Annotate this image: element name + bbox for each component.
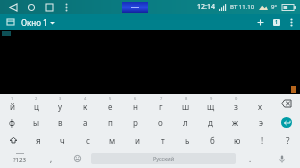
button[interactable]: в bbox=[48, 113, 73, 131]
staticText: ? bbox=[286, 135, 290, 146]
staticText: и bbox=[135, 135, 140, 146]
staticText: о bbox=[158, 117, 163, 128]
button[interactable]: м bbox=[100, 131, 125, 149]
staticText: к bbox=[83, 101, 88, 112]
button[interactable]: 2 bbox=[24, 94, 48, 113]
staticText: , bbox=[50, 153, 53, 164]
staticText: т bbox=[161, 135, 165, 146]
staticText: щ bbox=[207, 101, 215, 112]
button[interactable]: 1 bbox=[0, 94, 24, 113]
staticText: у bbox=[58, 101, 63, 112]
staticText: 7 bbox=[160, 96, 163, 101]
staticText: Русский bbox=[153, 155, 175, 162]
staticText: л bbox=[183, 117, 188, 128]
button[interactable]: More navigation options bbox=[58, 0, 74, 14]
button[interactable]: а bbox=[73, 113, 98, 131]
staticText: с bbox=[86, 135, 90, 146]
button[interactable]: ? bbox=[275, 131, 300, 149]
button[interactable]: 5 bbox=[98, 94, 123, 113]
staticText: ж bbox=[232, 117, 239, 128]
staticText: н bbox=[133, 101, 138, 112]
staticText: ш bbox=[182, 101, 190, 112]
button[interactable]: Русский bbox=[91, 153, 236, 164]
button[interactable]: Shift bbox=[0, 131, 26, 149]
staticText: ф bbox=[9, 117, 15, 128]
button[interactable]: о bbox=[148, 113, 173, 131]
staticText: 8 bbox=[185, 96, 188, 101]
button[interactable]: 3 bbox=[48, 94, 73, 113]
button[interactable]: . bbox=[237, 149, 263, 168]
staticText: ы bbox=[33, 117, 40, 128]
button[interactable]: Окно 1 bbox=[20, 15, 56, 30]
staticText: ц bbox=[34, 101, 39, 112]
staticText: й bbox=[10, 101, 15, 112]
staticText: 9 bbox=[210, 96, 213, 101]
button[interactable]: 9 bbox=[198, 94, 223, 113]
staticText: я bbox=[36, 135, 41, 146]
button[interactable]: Menu bbox=[3, 15, 17, 29]
button[interactable]: Recent apps bbox=[40, 0, 58, 14]
button[interactable]: б bbox=[200, 131, 225, 149]
button[interactable]: Emoji bbox=[64, 149, 90, 168]
staticText: 1 bbox=[11, 96, 14, 101]
button[interactable]: л bbox=[173, 113, 198, 131]
staticText: е bbox=[108, 101, 113, 112]
button[interactable]: ф bbox=[0, 113, 24, 131]
button[interactable]: ы bbox=[24, 113, 48, 131]
button[interactable]: э bbox=[248, 113, 273, 131]
button[interactable]: ю bbox=[225, 131, 250, 149]
staticText: ь bbox=[185, 135, 190, 146]
button[interactable]: ж bbox=[223, 113, 248, 131]
button[interactable]: Voice input bbox=[263, 149, 300, 168]
staticText: м bbox=[109, 135, 116, 146]
staticText: ю bbox=[234, 135, 241, 146]
button[interactable]: т bbox=[150, 131, 175, 149]
button[interactable]: д bbox=[198, 113, 223, 131]
staticText: д bbox=[208, 117, 213, 128]
staticText: 6 bbox=[134, 96, 137, 101]
staticText: ! bbox=[261, 135, 264, 146]
staticText: п bbox=[108, 117, 113, 128]
button[interactable]: 7 bbox=[148, 94, 173, 113]
staticText: ч bbox=[60, 135, 65, 146]
staticText: 5 bbox=[109, 96, 112, 101]
button[interactable]: и bbox=[125, 131, 150, 149]
button[interactable]: Backspace bbox=[273, 94, 300, 113]
staticText: ?123 bbox=[13, 156, 26, 164]
staticText: Окно 1 bbox=[21, 17, 48, 28]
button[interactable]: 0 bbox=[223, 94, 248, 113]
button[interactable]: р bbox=[123, 113, 148, 131]
staticText: э bbox=[259, 117, 263, 128]
button[interactable]: 6 bbox=[123, 94, 148, 113]
staticText: 1 bbox=[275, 19, 278, 26]
staticText: BT 11.10 bbox=[230, 3, 255, 11]
button[interactable]: п bbox=[98, 113, 123, 131]
button[interactable]: 4 bbox=[73, 94, 98, 113]
staticText: 0 bbox=[235, 96, 238, 101]
button[interactable]: New tab bbox=[252, 14, 268, 30]
button[interactable]: Home bbox=[22, 0, 40, 14]
button[interactable]: х bbox=[248, 94, 273, 113]
staticText: 2 bbox=[35, 96, 38, 101]
staticText: р bbox=[133, 117, 138, 128]
button[interactable]: ?123 bbox=[0, 149, 38, 168]
button[interactable]: ч bbox=[50, 131, 75, 149]
button[interactable]: More options bbox=[284, 14, 298, 30]
button[interactable]: с bbox=[75, 131, 100, 149]
button[interactable]: Back bbox=[4, 0, 22, 14]
staticText: 3 bbox=[59, 96, 62, 101]
staticText: з bbox=[234, 101, 238, 112]
staticText: 12:14 bbox=[197, 2, 215, 12]
button[interactable]: Tabs bbox=[268, 14, 284, 30]
button[interactable]: я bbox=[26, 131, 50, 149]
button[interactable]: 8 bbox=[173, 94, 198, 113]
button[interactable]: Enter bbox=[281, 117, 292, 128]
staticText: а bbox=[83, 117, 88, 128]
button[interactable]: ! bbox=[250, 131, 275, 149]
button[interactable]: ь bbox=[175, 131, 200, 149]
staticText: . bbox=[249, 153, 252, 164]
staticText: 9° bbox=[271, 3, 278, 11]
staticText: х bbox=[258, 101, 263, 112]
staticText: б bbox=[210, 135, 215, 146]
button[interactable]: , bbox=[38, 149, 64, 168]
